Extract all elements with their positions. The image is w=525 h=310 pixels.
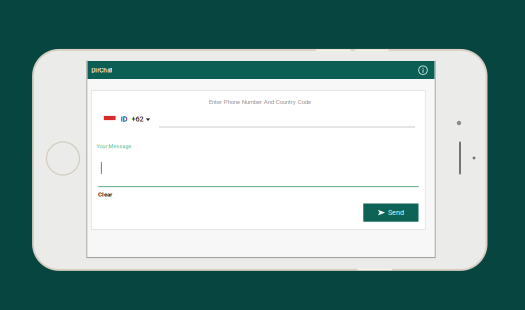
button[interactable]: DirChat — [87, 61, 434, 79]
staticText: +62 — [131, 115, 143, 123]
button[interactable]: Clear — [94, 189, 116, 200]
button[interactable]: Send — [363, 203, 418, 222]
staticText: Enter Phone Number And Country Code — [209, 98, 311, 105]
staticText: Clear — [98, 191, 112, 198]
staticText: Your Message — [97, 143, 132, 149]
button[interactable]: ID — [91, 109, 153, 127]
staticText: Send — [388, 208, 404, 217]
button[interactable]: Info — [417, 65, 428, 76]
staticText: ID — [121, 115, 128, 123]
staticText: DirChat — [91, 67, 112, 74]
